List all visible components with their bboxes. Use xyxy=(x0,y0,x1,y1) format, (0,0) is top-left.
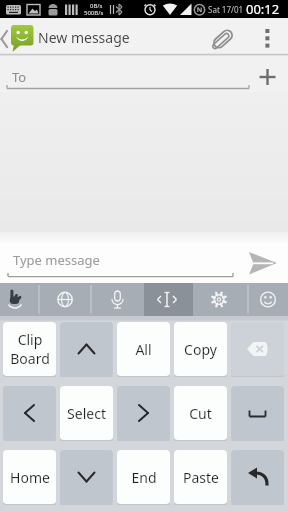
button[interactable] xyxy=(60,322,113,376)
button[interactable] xyxy=(260,18,288,56)
button[interactable] xyxy=(244,232,288,283)
button[interactable] xyxy=(144,283,193,316)
staticText: Cut xyxy=(189,404,212,423)
staticText: To xyxy=(12,68,27,86)
button[interactable]: End xyxy=(117,450,170,504)
staticText: Sat 17/01 xyxy=(208,4,244,15)
button[interactable] xyxy=(60,450,113,504)
staticText: 500B/s xyxy=(84,9,104,17)
button[interactable] xyxy=(231,386,284,440)
button[interactable]: Home xyxy=(3,450,56,504)
staticText: New message xyxy=(38,28,130,47)
button[interactable]: Cut xyxy=(174,386,227,440)
staticText: Select xyxy=(67,404,106,423)
button[interactable]: Select xyxy=(60,386,113,440)
staticText: 0B/s xyxy=(90,2,103,10)
button[interactable]: Clip Board xyxy=(3,322,56,376)
button[interactable]: Copy xyxy=(174,322,227,376)
button[interactable] xyxy=(193,283,248,316)
staticText: End xyxy=(131,468,157,487)
button[interactable] xyxy=(231,450,284,504)
staticText: Home xyxy=(10,468,50,487)
button[interactable] xyxy=(39,283,91,316)
staticText: All xyxy=(135,340,152,359)
staticText: Clip Board xyxy=(10,330,50,368)
button[interactable] xyxy=(231,322,284,376)
staticText: 00:12 xyxy=(246,0,280,18)
staticText: Paste xyxy=(183,468,219,487)
button[interactable] xyxy=(117,386,170,440)
button[interactable] xyxy=(91,283,144,316)
staticText: Type message xyxy=(13,251,100,269)
button[interactable] xyxy=(3,386,56,440)
button[interactable] xyxy=(248,283,288,316)
button[interactable]: To xyxy=(0,56,288,92)
button[interactable] xyxy=(210,18,254,56)
staticText: Copy xyxy=(184,340,217,359)
button[interactable] xyxy=(0,283,39,316)
button[interactable]: Paste xyxy=(174,450,227,504)
button[interactable]: All xyxy=(117,322,170,376)
